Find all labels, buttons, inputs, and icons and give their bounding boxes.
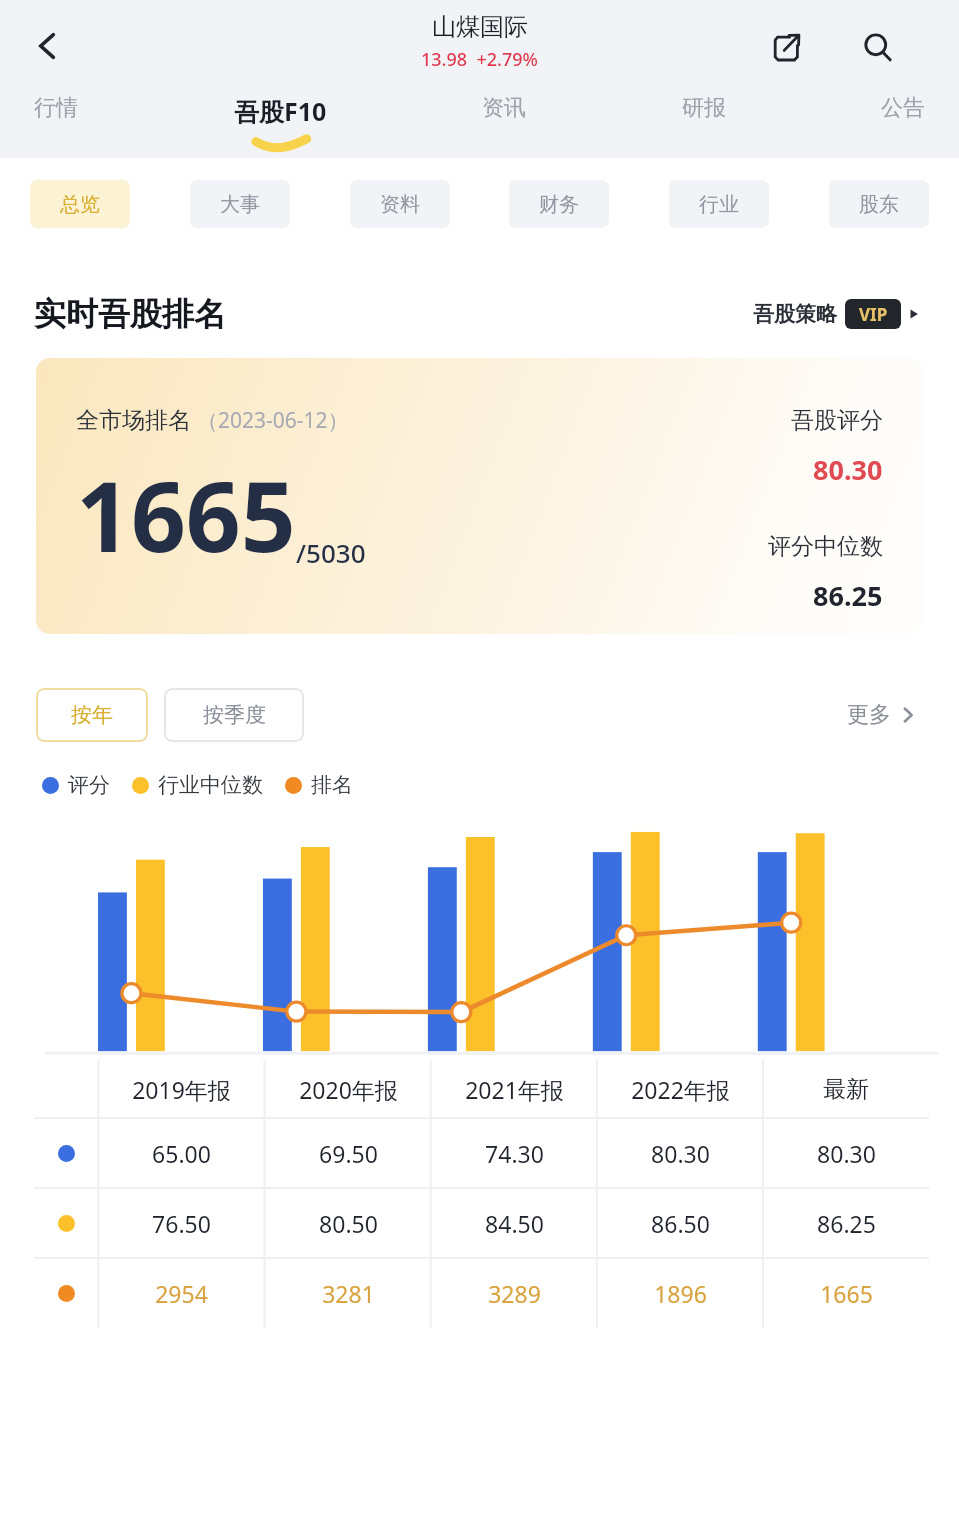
staticText: 13.98 +2.79% (421, 47, 538, 72)
staticText: 评分 (68, 772, 110, 798)
button[interactable]: 全市场排名 (36, 358, 923, 634)
button[interactable]: 财务 (509, 180, 609, 228)
button[interactable]: 总览 (30, 180, 130, 228)
button[interactable]: 按年 (36, 688, 148, 742)
staticText: 研报 (682, 94, 726, 122)
staticText: 80.30 (651, 1138, 710, 1169)
staticText: 吾股F10 (234, 94, 327, 128)
staticText: 80.50 (319, 1208, 378, 1239)
button[interactable]: 吾股F10 (230, 92, 331, 152)
staticText: 2019年报 (132, 1074, 231, 1105)
button[interactable]: 行业 (669, 180, 769, 228)
staticText: 评分中位数 (768, 532, 883, 561)
staticText: 86.50 (651, 1208, 710, 1239)
staticText: 84.50 (485, 1208, 544, 1239)
staticText: 80.30 (813, 451, 883, 488)
staticText: 资讯 (482, 94, 526, 122)
staticText: 86.25 (817, 1208, 876, 1239)
staticText: 实时吾股排名 (34, 294, 226, 334)
button[interactable]: 资料 (350, 180, 450, 228)
button[interactable]: 研报 (678, 92, 730, 124)
staticText: 76.50 (152, 1208, 211, 1239)
staticText: 公告 (881, 94, 925, 122)
staticText: 74.30 (485, 1138, 544, 1169)
button[interactable]: 吾股策略 (749, 295, 925, 333)
staticText: 3289 (488, 1278, 541, 1309)
button[interactable]: Search (852, 22, 904, 74)
staticText: 2020年报 (299, 1074, 398, 1105)
staticText: /5030 (296, 535, 366, 570)
staticText: 1665 (820, 1278, 873, 1309)
staticText: 山煤国际 (432, 12, 528, 42)
staticText: 更多 (847, 701, 891, 729)
staticText: 全市场排名 (76, 406, 191, 435)
staticText: 2022年报 (631, 1074, 730, 1105)
staticText: VIP (859, 303, 888, 326)
staticText: （2023-06-12） (197, 406, 349, 435)
staticText: 86.25 (813, 577, 883, 614)
staticText: 行业中位数 (158, 772, 263, 798)
button[interactable]: 行情 (30, 92, 82, 124)
staticText: 资料 (380, 192, 420, 217)
staticText: 按季度 (203, 702, 266, 728)
staticText: 1665 (76, 449, 296, 580)
staticText: 2954 (155, 1278, 208, 1309)
button[interactable]: 公告 (877, 92, 929, 124)
button[interactable]: 资讯 (478, 92, 530, 124)
staticText: 65.00 (152, 1138, 211, 1169)
staticText: 股东 (859, 192, 899, 217)
button[interactable]: 按季度 (164, 688, 304, 742)
staticText: 3281 (322, 1278, 375, 1309)
staticText: 吾股策略 (753, 301, 837, 327)
staticText: 吾股评分 (791, 406, 883, 435)
staticText: 行情 (34, 94, 78, 122)
staticText: 行业 (699, 192, 739, 217)
staticText: 1896 (654, 1278, 707, 1309)
button[interactable]: Back (20, 18, 76, 74)
staticText: 最新 (823, 1075, 869, 1104)
staticText: 80.30 (817, 1138, 876, 1169)
staticText: 总览 (60, 192, 100, 217)
staticText: 排名 (311, 772, 353, 798)
staticText: 69.50 (319, 1138, 378, 1169)
button[interactable]: 股东 (829, 180, 929, 228)
staticText: 财务 (539, 192, 579, 217)
button[interactable]: 大事 (190, 180, 290, 228)
staticText: 2021年报 (465, 1074, 564, 1105)
button[interactable]: 更多 (841, 695, 923, 735)
staticText: 按年 (71, 702, 113, 728)
button[interactable]: Share (760, 22, 812, 74)
staticText: 大事 (220, 192, 260, 217)
